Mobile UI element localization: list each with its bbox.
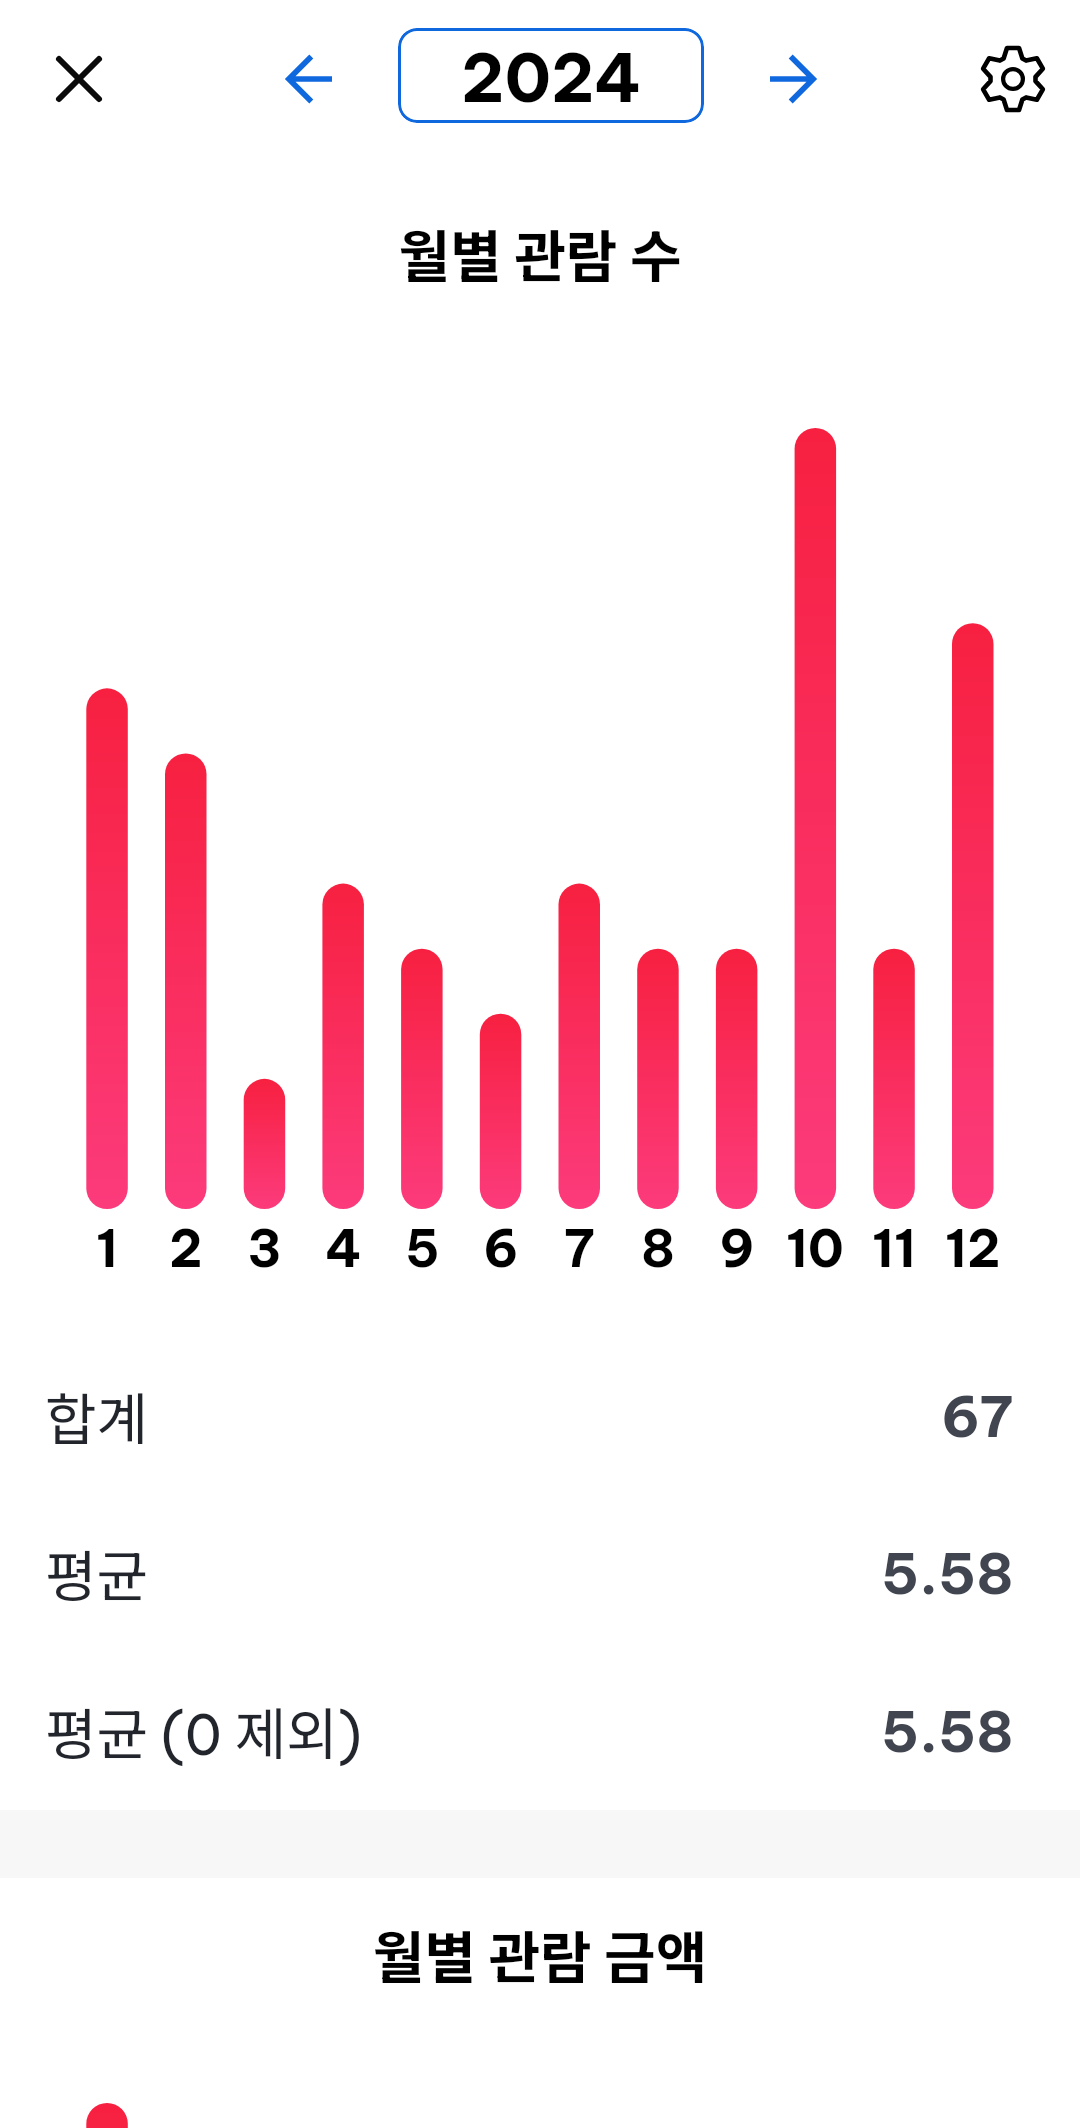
button[interactable]: 2024 (398, 28, 704, 123)
staticText: 7 (564, 1216, 595, 1278)
button[interactable]: Next year (741, 27, 845, 131)
staticText: 월별 관람 수 (0, 212, 1080, 293)
staticText: 월별 관람 금액 (0, 1913, 1080, 1994)
button[interactable]: 평균 (0 제외) (0, 1659, 1080, 1802)
staticText: 3 (247, 1216, 282, 1278)
staticText: 8 (641, 1216, 676, 1278)
staticText: 평균 (45, 1532, 149, 1613)
staticText: 12 (945, 1216, 1001, 1278)
staticText: 6 (483, 1216, 519, 1278)
staticText: 평균 (0 제외) (45, 1690, 362, 1771)
button[interactable]: Previous year (257, 27, 361, 131)
staticText: 67 (941, 1381, 1014, 1452)
button[interactable]: Settings (961, 27, 1065, 131)
button[interactable]: 합계 (0, 1344, 1080, 1487)
staticText: 2 (169, 1216, 203, 1278)
staticText: 5 (405, 1216, 440, 1278)
staticText: 10 (786, 1216, 844, 1278)
staticText: 1 (96, 1216, 118, 1278)
staticText: 2024 (461, 36, 642, 119)
button[interactable]: 평균 (0, 1501, 1080, 1644)
staticText: 4 (325, 1216, 362, 1278)
staticText: 9 (719, 1216, 755, 1278)
staticText: 5.58 (881, 1696, 1014, 1767)
staticText: 합계 (45, 1375, 149, 1456)
staticText: 5.58 (881, 1538, 1014, 1609)
button[interactable]: Close (27, 27, 131, 131)
staticText: 11 (872, 1216, 916, 1278)
